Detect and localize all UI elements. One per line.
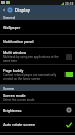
staticText: Multi window (3, 50, 26, 55)
staticText: Wallpaper (3, 25, 21, 30)
button[interactable]: Notification panel (0, 35, 75, 48)
button[interactable]: Page buddy on (62, 71, 73, 78)
button[interactable]: Page buddy (0, 65, 75, 85)
staticText: Select the screen mode (3, 98, 35, 102)
button[interactable]: Wallpaper (0, 20, 75, 35)
staticText: Multitask by using two applications at t… (3, 55, 65, 63)
staticText: Screen mode (3, 93, 26, 98)
button[interactable]: Multi window off (65, 53, 73, 60)
staticText: Auto rotate screen (3, 122, 35, 127)
staticText: Context related pages are automatically … (3, 73, 62, 81)
staticText: Page buddy (3, 68, 24, 73)
button[interactable]: Brightness (0, 104, 75, 117)
button[interactable]: Multi window (0, 48, 75, 65)
button[interactable]: Auto rotate screen on (65, 121, 73, 129)
button[interactable]: Screen mode (0, 91, 75, 104)
button[interactable]: Auto rotate screen (0, 117, 75, 133)
staticText: Display (15, 7, 30, 13)
staticText: Notification panel (3, 39, 34, 44)
button[interactable]: Brightness settings (65, 106, 73, 114)
staticText: 23:18 (65, 1, 74, 5)
staticText: General (3, 15, 16, 20)
staticText: Brightness (3, 108, 22, 113)
staticText: Screen (3, 86, 15, 91)
button[interactable]: Navigate up (0, 5, 7, 14)
